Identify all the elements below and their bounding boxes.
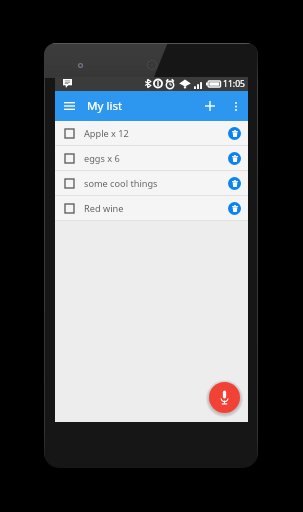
button[interactable]: Voice input: [209, 382, 240, 413]
staticText: Red wine: [84, 202, 124, 215]
staticText: some cool things: [84, 177, 158, 190]
button[interactable]: Apple x 12: [55, 121, 248, 145]
button[interactable]: eggs x 6: [55, 146, 248, 170]
staticText: eggs x 6: [84, 152, 120, 165]
button[interactable]: Red wine: [55, 196, 248, 220]
button[interactable]: More options: [224, 91, 248, 121]
staticText: Apple x 12: [84, 127, 129, 140]
button[interactable]: some cool things: [55, 171, 248, 195]
staticText: My list: [87, 98, 123, 114]
button[interactable]: Add item: [195, 91, 224, 121]
button[interactable]: Delete some cool things: [225, 172, 244, 195]
button[interactable]: Delete eggs x 6: [225, 147, 244, 170]
button[interactable]: Navigation menu: [55, 91, 84, 121]
staticText: 11:05: [223, 78, 245, 90]
button[interactable]: Delete Red wine: [225, 197, 244, 220]
button[interactable]: Delete Apple x 12: [225, 122, 244, 145]
